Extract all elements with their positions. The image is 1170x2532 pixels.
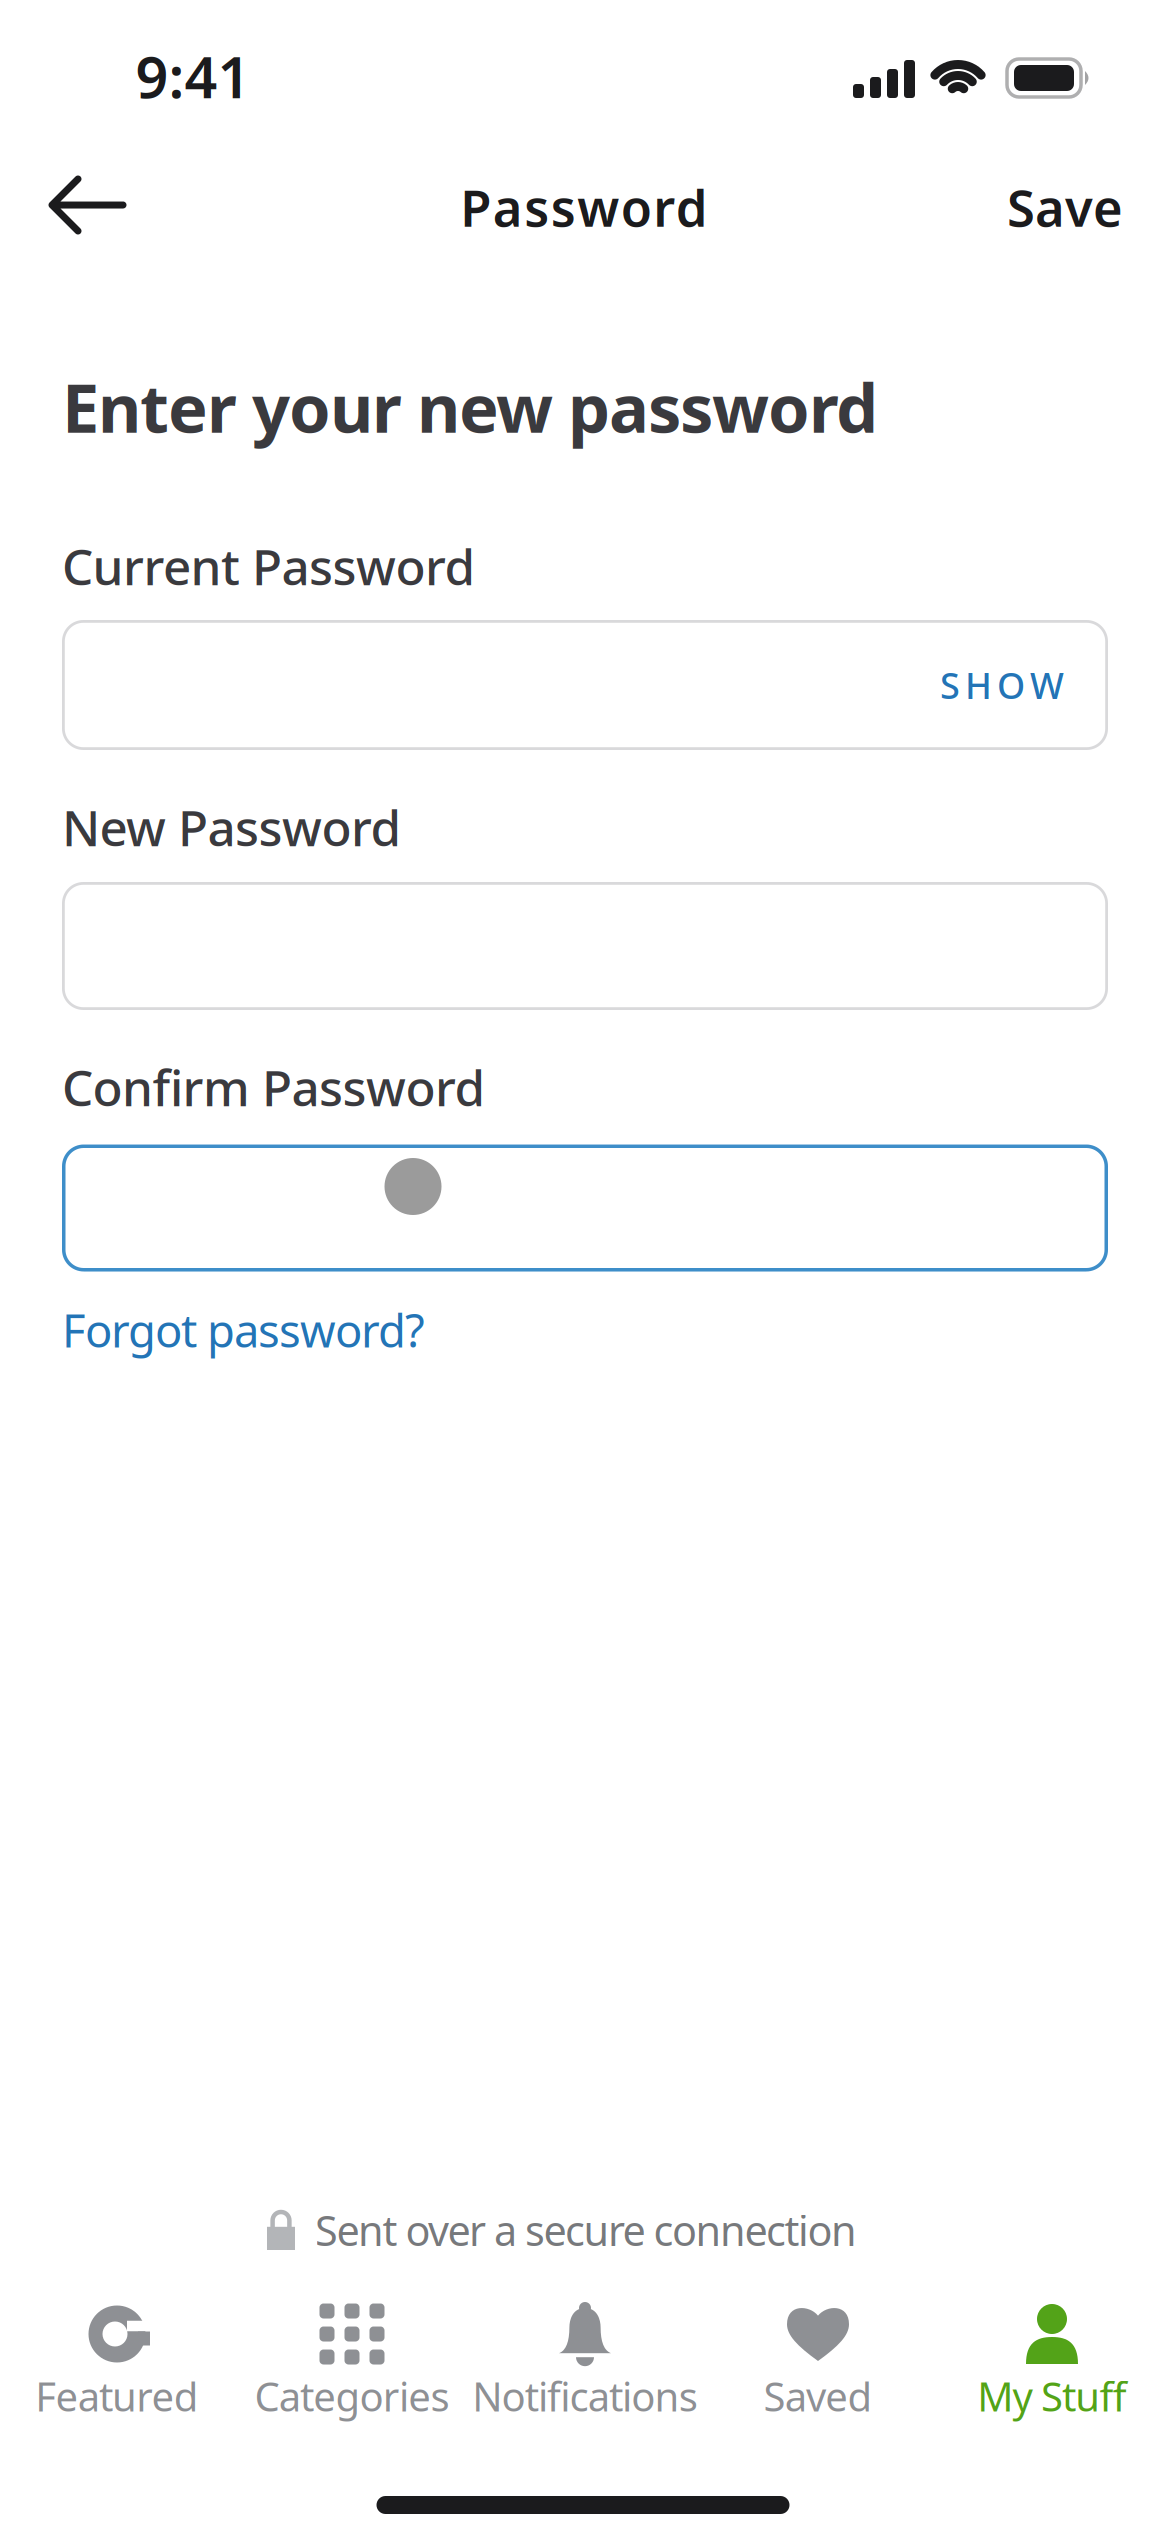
staticText: Enter your new password bbox=[62, 363, 878, 451]
staticText: Notifications bbox=[472, 2369, 698, 2422]
button[interactable]: Forgot password? bbox=[62, 1300, 425, 1360]
button[interactable]: My Stuff bbox=[934, 2301, 1170, 2425]
staticText: Current Password bbox=[62, 533, 475, 599]
staticText: 9:41 bbox=[135, 38, 250, 114]
button[interactable]: Notifications bbox=[467, 2301, 703, 2425]
staticText: Categories bbox=[255, 2369, 449, 2422]
button[interactable]: Saved bbox=[700, 2301, 936, 2425]
staticText: Sent over a secure connection bbox=[315, 2203, 857, 2257]
button[interactable]: Save bbox=[1007, 173, 1123, 241]
button[interactable]: Categories bbox=[234, 2301, 470, 2425]
staticText: Saved bbox=[764, 2369, 872, 2422]
button[interactable]: SHOW bbox=[940, 661, 1064, 709]
button[interactable] bbox=[62, 620, 1108, 750]
staticText: SHOW bbox=[940, 661, 1064, 709]
button[interactable] bbox=[62, 882, 1108, 1010]
staticText: Confirm Password bbox=[62, 1054, 485, 1120]
button[interactable]: Featured bbox=[0, 2301, 235, 2425]
staticText: Password bbox=[460, 173, 708, 241]
button[interactable] bbox=[49, 175, 123, 235]
staticText: Save bbox=[1007, 173, 1123, 241]
button[interactable] bbox=[62, 1144, 1108, 1271]
staticText: New Password bbox=[62, 794, 401, 860]
staticText: Forgot password? bbox=[62, 1300, 425, 1360]
staticText: My Stuff bbox=[977, 2369, 1127, 2422]
staticText: Featured bbox=[35, 2369, 199, 2422]
